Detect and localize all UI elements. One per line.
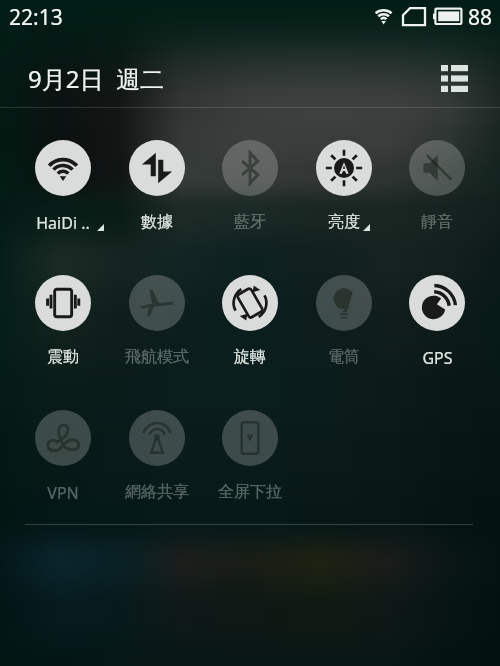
staticText: 震動 xyxy=(47,347,79,367)
button[interactable]: 亮度 xyxy=(297,138,391,230)
button[interactable]: HaiDi .. xyxy=(16,138,110,230)
staticText: 網絡共享 xyxy=(125,482,189,502)
button[interactable]: 藍牙 xyxy=(203,138,297,230)
button[interactable]: 電筒 xyxy=(297,273,391,365)
staticText: 22:13 xyxy=(9,3,63,32)
button[interactable]: 全屏下拉 xyxy=(203,408,297,500)
staticText: 9月2日 週二 xyxy=(28,62,164,95)
staticText: 旋轉 xyxy=(234,347,266,367)
staticText: 電筒 xyxy=(328,347,360,367)
staticText: 88 xyxy=(468,3,493,32)
staticText: 藍牙 xyxy=(234,212,266,232)
staticText: 亮度 xyxy=(328,212,360,232)
button[interactable]: 網絡共享 xyxy=(110,408,204,500)
button[interactable]: 旋轉 xyxy=(203,273,297,365)
button[interactable]: 數據 xyxy=(110,138,204,230)
staticText: HaiDi .. xyxy=(36,212,90,234)
staticText: 全屏下拉 xyxy=(218,482,282,502)
staticText: 靜音 xyxy=(421,212,453,232)
button[interactable]: 靜音 xyxy=(390,138,484,230)
staticText: GPS xyxy=(422,347,453,369)
button[interactable]: GPS xyxy=(390,273,484,365)
button[interactable]: VPN xyxy=(16,408,110,500)
button[interactable]: 震動 xyxy=(16,273,110,365)
button[interactable]: Notification list xyxy=(430,54,478,102)
button[interactable]: 飛航模式 xyxy=(110,273,204,365)
staticText: 飛航模式 xyxy=(125,347,189,367)
staticText: 數據 xyxy=(141,212,173,232)
staticText: VPN xyxy=(47,482,79,504)
